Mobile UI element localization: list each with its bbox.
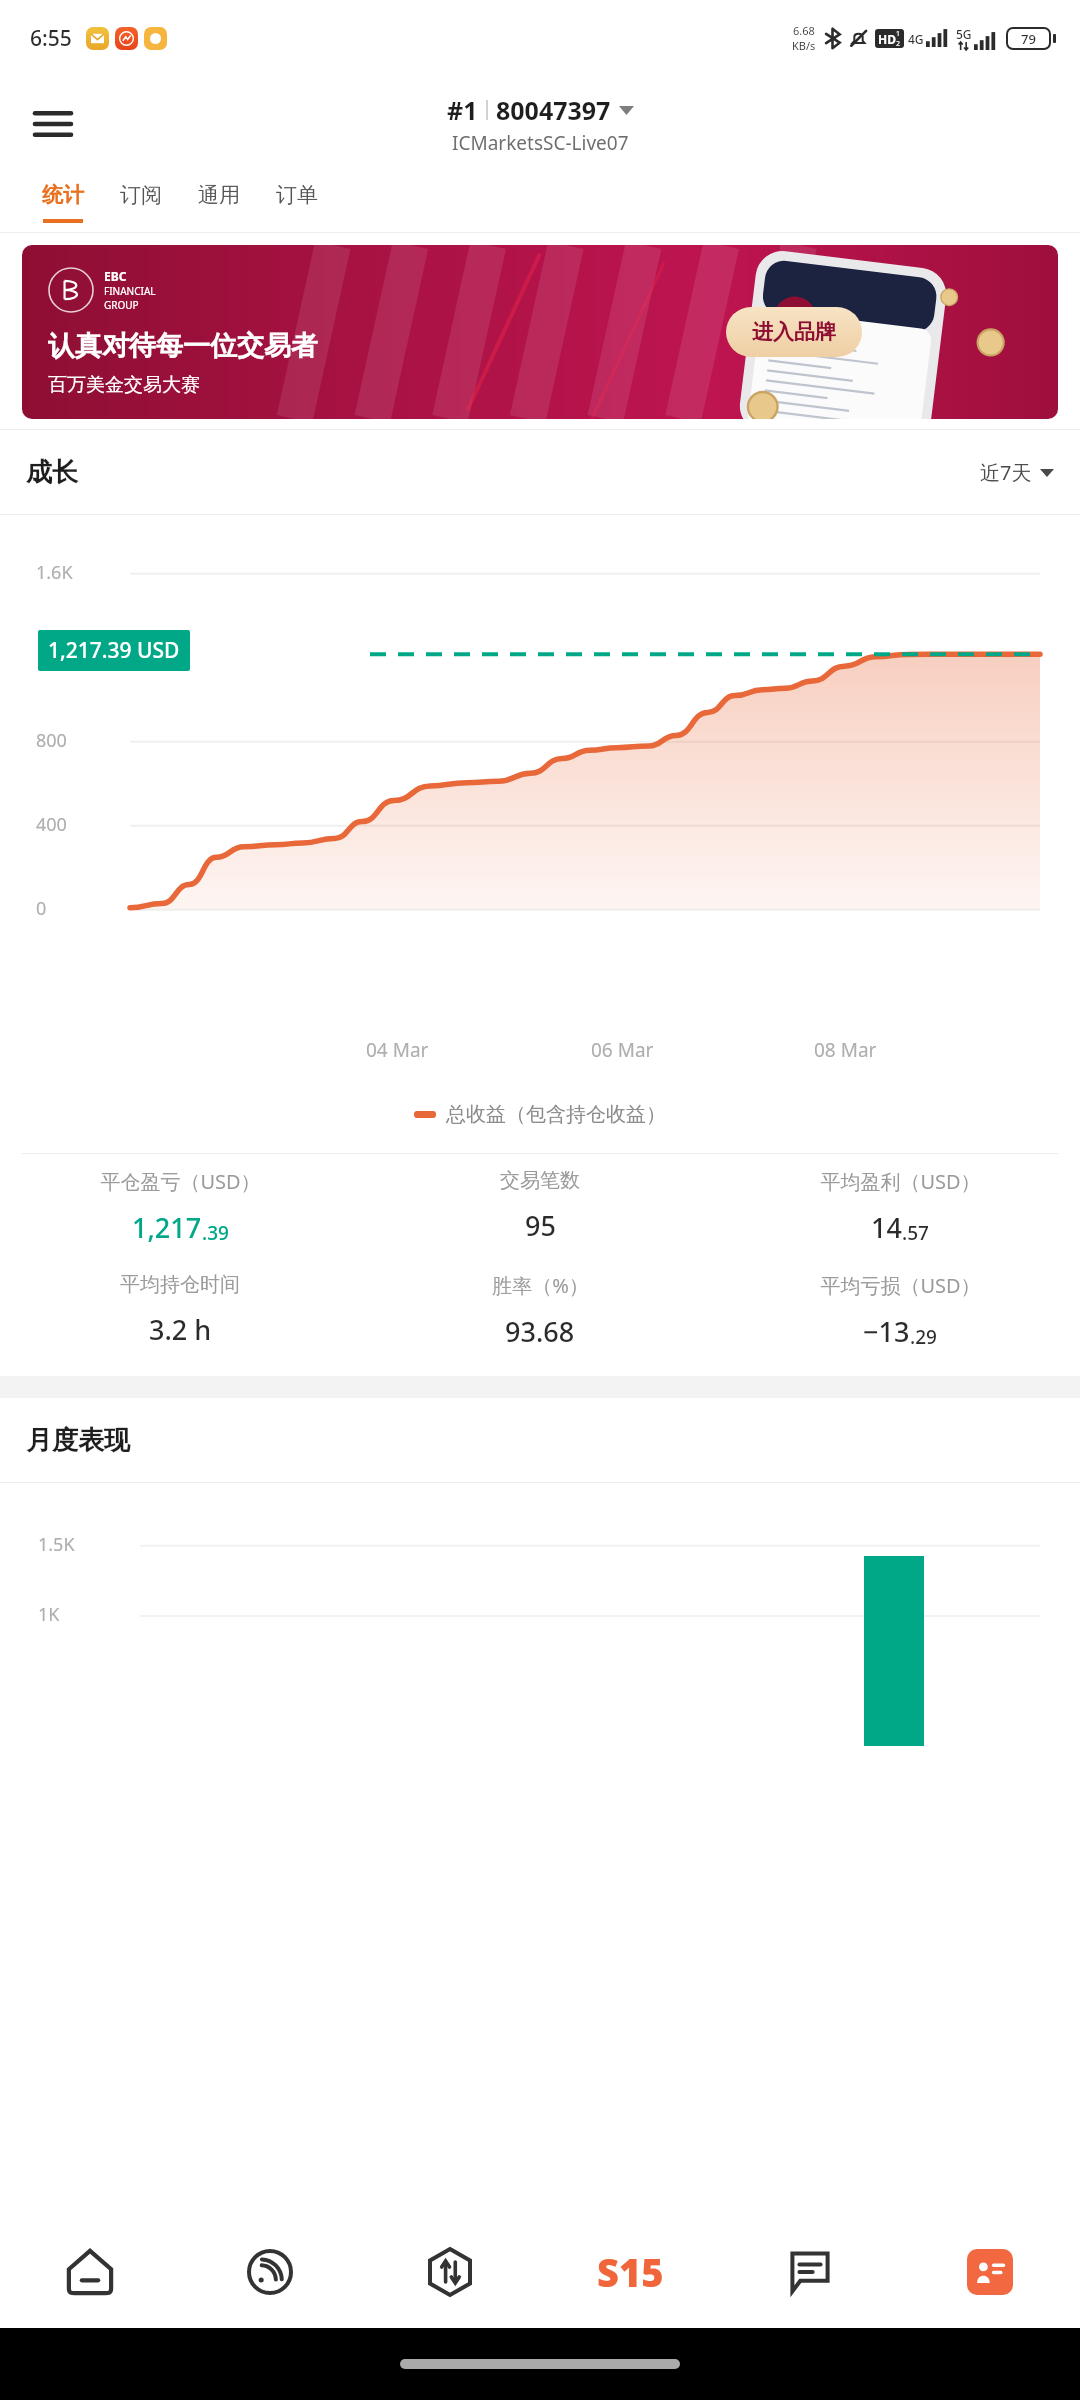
staticText: 3.2 h	[149, 1311, 212, 1348]
staticText: 平均亏损（USD）	[820, 1272, 981, 1299]
staticText: .39	[202, 1220, 229, 1246]
staticText: 平均盈利（USD）	[820, 1168, 981, 1195]
staticText: GROUP	[104, 298, 139, 312]
staticText: 2	[896, 39, 901, 48]
staticText: 6.68	[793, 23, 815, 38]
staticText: 79	[1021, 30, 1036, 48]
staticText: 交易笔数	[500, 1168, 580, 1193]
staticText: .29	[910, 1324, 937, 1350]
staticText: 1,217.39 USD	[48, 636, 180, 665]
staticText: 14	[871, 1209, 902, 1246]
staticText: 成长	[26, 456, 78, 489]
staticText: 百万美金交易大赛	[48, 373, 200, 397]
staticText: 4G	[908, 31, 924, 47]
staticText: 95	[525, 1207, 556, 1244]
staticText: 通用	[198, 182, 240, 208]
button[interactable]: EBC	[22, 245, 1058, 419]
button[interactable]: #1	[447, 93, 634, 156]
staticText: 订阅	[120, 182, 162, 208]
staticText: S15	[597, 2246, 664, 2298]
button[interactable]: 平均盈利（USD）	[720, 1168, 1080, 1246]
staticText: 800	[36, 728, 67, 753]
button[interactable]: Account	[900, 2216, 1080, 2328]
staticText: 平均持仓时间	[120, 1272, 240, 1297]
staticText: 1.5K	[38, 1532, 75, 1557]
staticText: FINANCIAL	[104, 284, 156, 298]
staticText: 400	[36, 812, 67, 837]
button[interactable]: 通用	[180, 172, 258, 233]
button[interactable]: Messages	[720, 2216, 900, 2328]
staticText: .57	[902, 1220, 929, 1246]
button[interactable]: 平仓盈亏（USD）	[0, 1168, 360, 1246]
button[interactable]: 交易笔数	[360, 1168, 720, 1244]
button[interactable]: 进入品牌	[726, 307, 862, 357]
staticText: 5G	[956, 26, 972, 42]
button[interactable]: 订单	[258, 172, 336, 233]
staticText: 1K	[38, 1602, 60, 1627]
staticText: 80047397	[496, 93, 611, 127]
staticText: 订单	[276, 182, 318, 208]
staticText: EBC	[104, 268, 127, 284]
staticText: #1	[447, 93, 478, 127]
staticText: 1,217	[132, 1209, 202, 1246]
button[interactable]: S15	[540, 2216, 720, 2328]
staticText: 平仓盈亏（USD）	[100, 1168, 261, 1195]
staticText: 04 Mar	[366, 1037, 429, 1063]
button[interactable]: Menu	[24, 95, 82, 153]
staticText: 胜率（%）	[492, 1272, 589, 1299]
staticText: 93.68	[505, 1313, 575, 1350]
staticText: 总收益（包含持仓收益）	[446, 1102, 666, 1127]
staticText: 月度表现	[26, 1424, 130, 1457]
button[interactable]: Copy trade	[360, 2216, 540, 2328]
staticText: 1	[896, 29, 901, 39]
button[interactable]: 胜率（%）	[360, 1272, 720, 1350]
staticText: 统计	[42, 182, 84, 208]
staticText: 1.6K	[36, 560, 73, 585]
staticText: KB/s	[792, 38, 816, 53]
button[interactable]: Signals	[180, 2216, 360, 2328]
button[interactable]: 平均持仓时间	[0, 1272, 360, 1348]
staticText: 6:55	[30, 24, 72, 53]
button[interactable]: 订阅	[102, 172, 180, 233]
staticText: 0	[36, 896, 47, 921]
staticText: 08 Mar	[814, 1037, 877, 1063]
staticText: HD	[878, 31, 896, 47]
staticText: 进入品牌	[752, 319, 836, 345]
button[interactable]: 近7天	[980, 459, 1054, 486]
staticText: −13	[863, 1313, 910, 1350]
staticText: 06 Mar	[591, 1037, 654, 1063]
staticText: ICMarketsSC-Live07	[452, 130, 629, 156]
button[interactable]: 平均亏损（USD）	[720, 1272, 1080, 1350]
staticText: 认真对待每一位交易者	[48, 329, 318, 363]
button[interactable]: Home	[0, 2216, 180, 2328]
button[interactable]: 统计	[24, 172, 102, 233]
staticText: 近7天	[980, 459, 1032, 486]
